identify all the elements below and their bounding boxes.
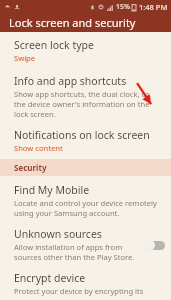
staticText: Security xyxy=(14,162,47,173)
staticText: Screen lock type xyxy=(14,38,94,52)
staticText: Unknown sources xyxy=(14,227,102,241)
staticText: Find My Mobile xyxy=(14,183,90,197)
button[interactable]: Unknown sources xyxy=(0,227,171,262)
staticText: Lock screen and security xyxy=(9,15,136,30)
staticText: Show content xyxy=(14,143,63,153)
staticText: Swipe xyxy=(14,53,36,63)
button[interactable]: Find My Mobile xyxy=(0,182,171,219)
staticText: 15% xyxy=(116,2,130,12)
staticText: 1:48 PM xyxy=(139,2,168,12)
button[interactable]: Info and app shortcuts xyxy=(0,73,171,120)
staticText: Allow installation of apps from sources … xyxy=(14,242,138,262)
staticText: Show app shortcuts, the dual clock, or t… xyxy=(14,89,159,119)
staticText: Info and app shortcuts xyxy=(14,74,127,88)
button[interactable]: Notifications on lock screen xyxy=(0,127,171,154)
staticText: Protect your device by encrypting its da… xyxy=(14,286,159,299)
staticText: Encrypt device xyxy=(14,271,86,285)
staticText: Locate and control your device remotely … xyxy=(14,198,159,218)
button[interactable]: Encrypt device xyxy=(0,270,171,300)
button[interactable]: Screen lock type xyxy=(0,37,171,64)
button[interactable]: Unknown sources toggle, off xyxy=(140,238,165,252)
staticText: Notifications on lock screen xyxy=(14,128,150,142)
